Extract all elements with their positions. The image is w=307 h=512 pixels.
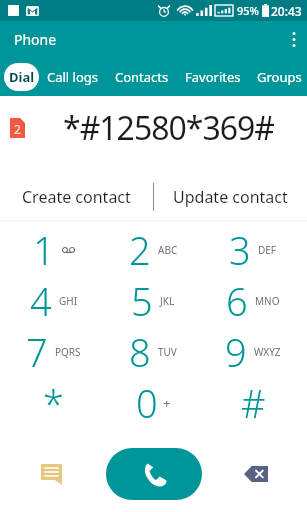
button[interactable]: More options	[281, 21, 307, 57]
staticText: 3	[229, 224, 251, 275]
staticText: 7	[26, 326, 48, 377]
staticText: 0	[136, 377, 158, 428]
staticText: 6	[226, 275, 248, 326]
staticText: PQRS	[55, 345, 81, 359]
staticText: ABC	[158, 243, 178, 257]
button[interactable]: Create contact	[0, 174, 153, 220]
button[interactable]: 2	[103, 224, 203, 275]
staticText: 2	[14, 121, 21, 137]
button[interactable]: Call	[106, 448, 202, 500]
staticText: WXYZ	[254, 345, 281, 359]
button[interactable]: #	[203, 377, 303, 428]
staticText: DEF	[258, 243, 277, 257]
staticText: Favorites	[185, 68, 241, 86]
staticText: +	[163, 394, 171, 412]
button[interactable]: 5	[103, 275, 203, 326]
button[interactable]: Update contact	[154, 174, 307, 220]
staticText: Groups	[257, 68, 302, 86]
staticText: Contacts	[115, 68, 169, 86]
button[interactable]: 9	[203, 326, 303, 377]
staticText: Dial	[9, 68, 35, 86]
button[interactable]: Contacts	[107, 61, 177, 93]
staticText: 4	[30, 275, 52, 326]
staticText: 95%	[237, 3, 259, 18]
staticText: 2	[129, 224, 151, 275]
staticText: JKL	[160, 294, 175, 308]
staticText: Phone	[14, 30, 57, 49]
button[interactable]: Favorites	[177, 61, 249, 93]
staticText: MNO	[255, 294, 280, 308]
staticText: TUV	[158, 345, 177, 359]
staticText: 20:43	[271, 3, 302, 19]
button[interactable]: 4	[4, 275, 103, 326]
button[interactable]: Backspace	[205, 436, 307, 512]
staticText: 5	[131, 275, 153, 326]
staticText: GHI	[59, 294, 78, 308]
button[interactable]: *	[4, 377, 103, 428]
button[interactable]: 1	[4, 224, 103, 275]
button[interactable]: Send message	[0, 436, 103, 512]
button[interactable]: 7	[4, 326, 103, 377]
staticText: #	[241, 377, 266, 428]
button[interactable]: Groups	[249, 61, 304, 93]
button[interactable]: 3	[203, 224, 303, 275]
staticText: Update contact	[173, 186, 288, 208]
staticText: Create contact	[22, 186, 131, 208]
button[interactable]: Dial	[4, 63, 39, 91]
button[interactable]: 8	[103, 326, 203, 377]
staticText: 9	[225, 326, 247, 377]
button[interactable]: Call logs	[39, 61, 107, 93]
staticText: Call logs	[47, 68, 99, 86]
button[interactable]: 6	[203, 275, 303, 326]
staticText: *	[43, 377, 64, 428]
staticText: 1	[33, 224, 55, 275]
staticText: 8	[129, 326, 151, 377]
staticText: *#12580*369#	[63, 106, 275, 150]
button[interactable]: 0	[103, 377, 203, 428]
